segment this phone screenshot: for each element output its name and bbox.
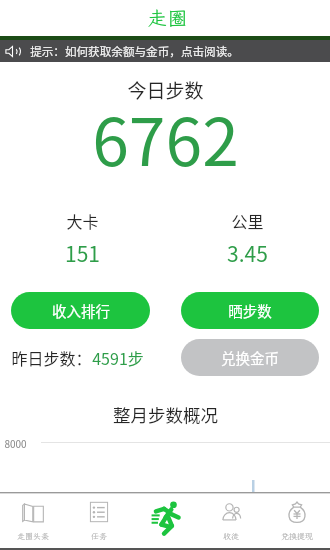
button[interactable]: 兑换金币: [181, 339, 319, 376]
staticText: 兑换提现: [281, 531, 313, 542]
staticText: 151: [65, 238, 100, 268]
staticText: 公里: [231, 209, 264, 232]
button[interactable]: 收入排行: [11, 292, 150, 329]
staticText: 走圈: [147, 5, 189, 30]
button[interactable]: 晒步数: [181, 292, 319, 329]
button[interactable]: 提示: [0, 40, 330, 62]
staticText: 晒步数: [228, 300, 272, 321]
staticText: 任务: [91, 531, 107, 542]
staticText: 提示：如何获取余额与金币，点击阅读。: [30, 43, 239, 60]
button[interactable]: 收徒: [198, 494, 264, 548]
staticText: 4591步: [92, 346, 144, 369]
button[interactable]: 走圈头条: [0, 494, 66, 548]
staticText: 6762: [92, 89, 239, 185]
staticText: 走圈头条: [17, 531, 49, 542]
staticText: 昨日步数：: [11, 346, 92, 369]
other: 提示: [5, 44, 20, 59]
staticText: 整月步数概况: [113, 402, 218, 427]
staticText: 今日步数: [127, 76, 204, 104]
button[interactable]: 步数: [132, 494, 198, 548]
staticText: 8000: [4, 436, 27, 450]
staticText: 收入排行: [52, 300, 110, 321]
staticText: 收徒: [223, 531, 239, 542]
button[interactable]: 任务: [66, 494, 132, 548]
staticText: 大卡: [66, 209, 99, 232]
button[interactable]: 兑换提现: [264, 494, 330, 548]
staticText: 3.45: [227, 238, 268, 268]
staticText: 兑换金币: [221, 347, 279, 368]
